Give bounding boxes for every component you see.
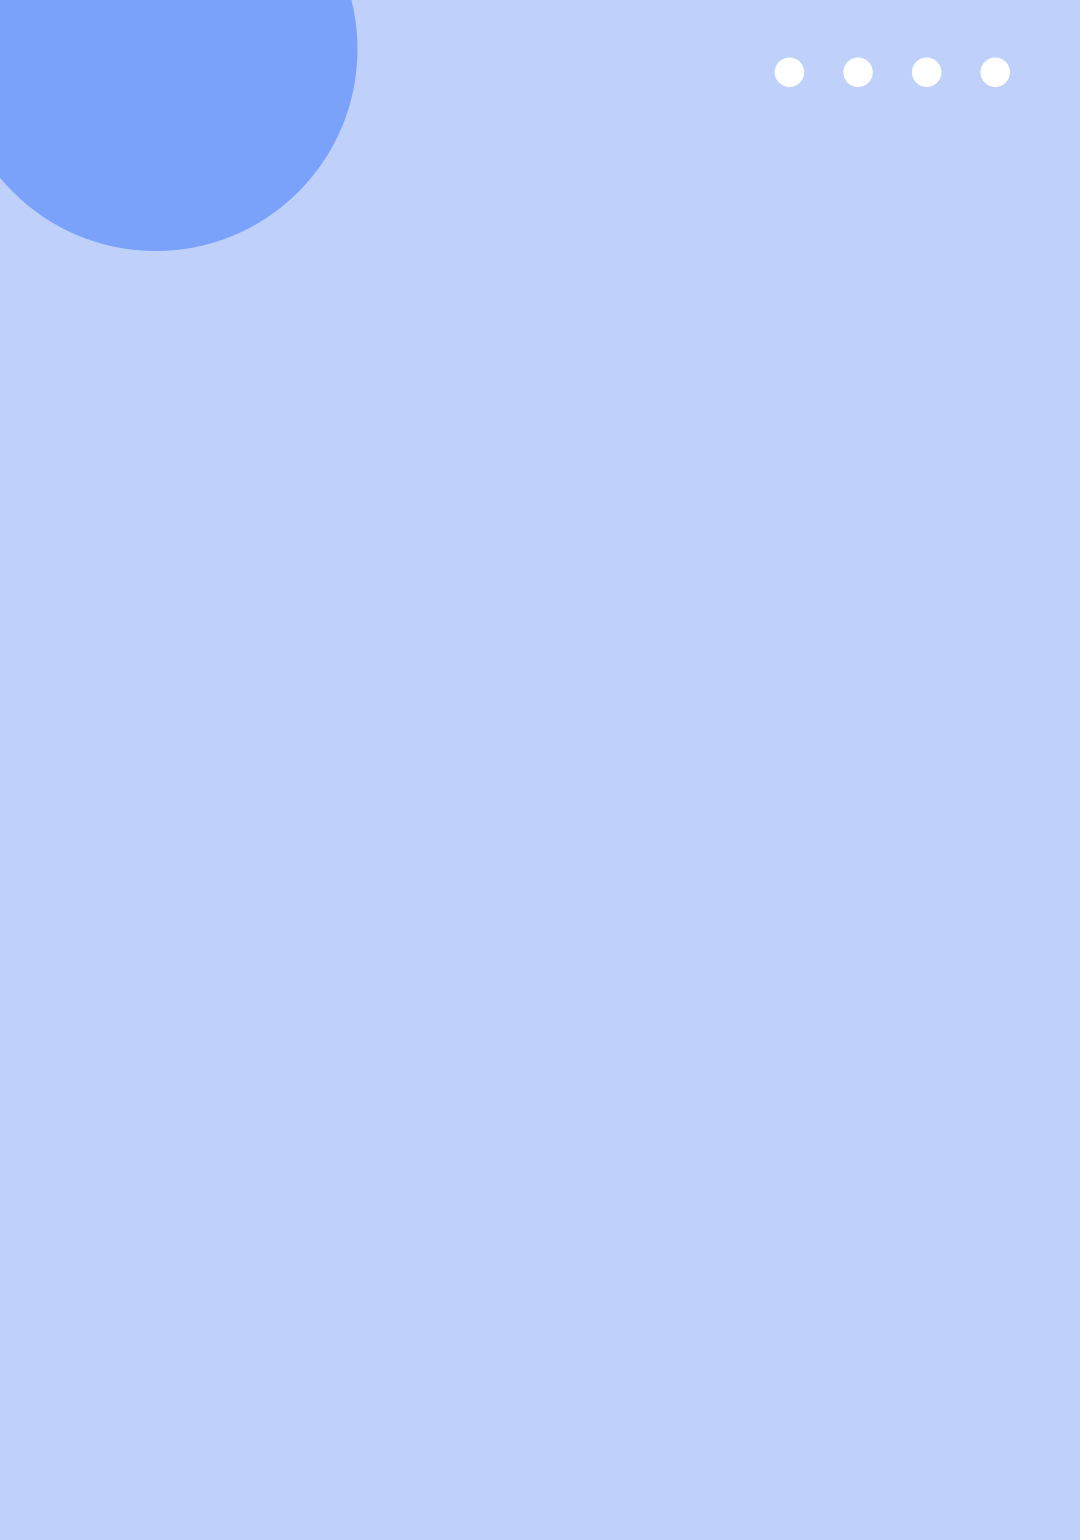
button[interactable]: Page indicator <box>775 57 1010 87</box>
